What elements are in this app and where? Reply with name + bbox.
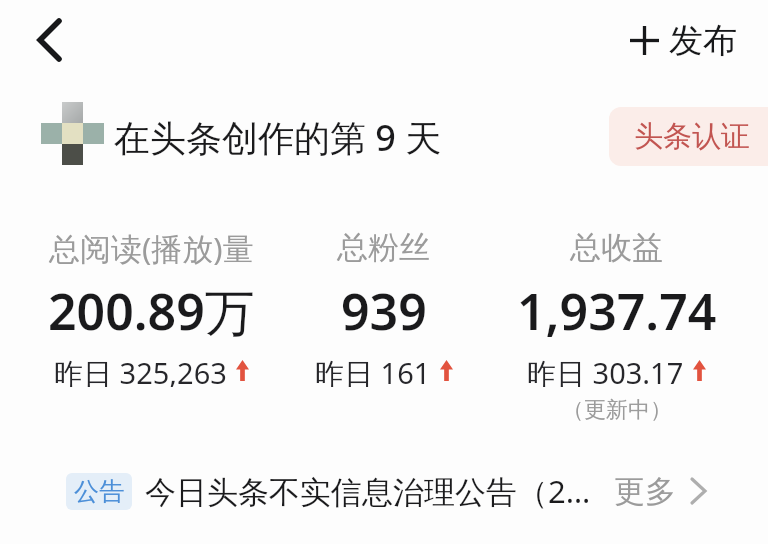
staticText: 公告	[74, 476, 124, 507]
staticText: 总粉丝	[337, 228, 430, 267]
button[interactable]: 发布	[630, 8, 737, 72]
staticText: 在头条创作的第 9 天	[114, 113, 442, 162]
staticText: 1,937.74	[517, 277, 717, 345]
staticText: 头条认证	[634, 118, 750, 155]
staticText: 今日头条不实信息治理公告（2…	[145, 470, 591, 512]
button[interactable]: 在头条创作的第 9 天	[114, 110, 442, 164]
staticText: 昨日 325,263	[54, 353, 227, 387]
staticText: 更多	[614, 472, 676, 511]
button[interactable]: Back	[21, 12, 77, 68]
button[interactable]: 头条认证	[609, 107, 768, 166]
staticText: 939	[341, 277, 427, 345]
button[interactable]: 总粉丝	[267, 226, 500, 436]
staticText: 200.89万	[48, 277, 255, 345]
staticText: 昨日 161	[315, 353, 431, 387]
button[interactable]: 公告	[0, 462, 768, 520]
button[interactable]: 总收益	[500, 226, 733, 436]
staticText: 昨日 303.17	[527, 353, 684, 387]
staticText: （更新中）	[562, 396, 672, 424]
staticText: 总收益	[570, 228, 663, 267]
staticText: 总阅读(播放)量	[49, 227, 254, 269]
staticText: 发布	[669, 19, 737, 62]
button[interactable]: 总阅读(播放)量	[35, 226, 267, 436]
